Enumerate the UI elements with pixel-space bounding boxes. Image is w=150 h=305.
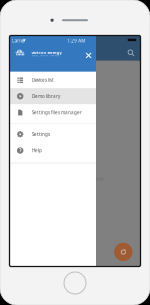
button[interactable]: Search — [123, 45, 138, 60]
staticText: Settings — [32, 131, 50, 137]
button[interactable]: Refresh — [114, 243, 132, 261]
button[interactable]: Settings — [9, 126, 96, 142]
staticText: nd — [96, 175, 104, 183]
button[interactable]: Settings files manager — [9, 104, 96, 121]
staticText: Help — [32, 147, 42, 154]
staticText: ? — [19, 147, 21, 154]
button[interactable]: ? — [9, 142, 96, 159]
staticText: Carrier — [12, 38, 26, 44]
staticText: Devices list — [32, 77, 54, 83]
button[interactable]: Close menu — [82, 49, 95, 61]
button[interactable]: Devices list — [9, 72, 96, 88]
staticText: Settings files manager — [32, 109, 82, 116]
button[interactable]: Demo library — [9, 88, 96, 104]
staticText: 1:29 AM — [67, 38, 85, 44]
staticText: Energy. Anytime. Anywhere. — [32, 54, 60, 57]
staticText: victron energy — [31, 49, 61, 55]
staticText: Demo library — [32, 93, 60, 99]
